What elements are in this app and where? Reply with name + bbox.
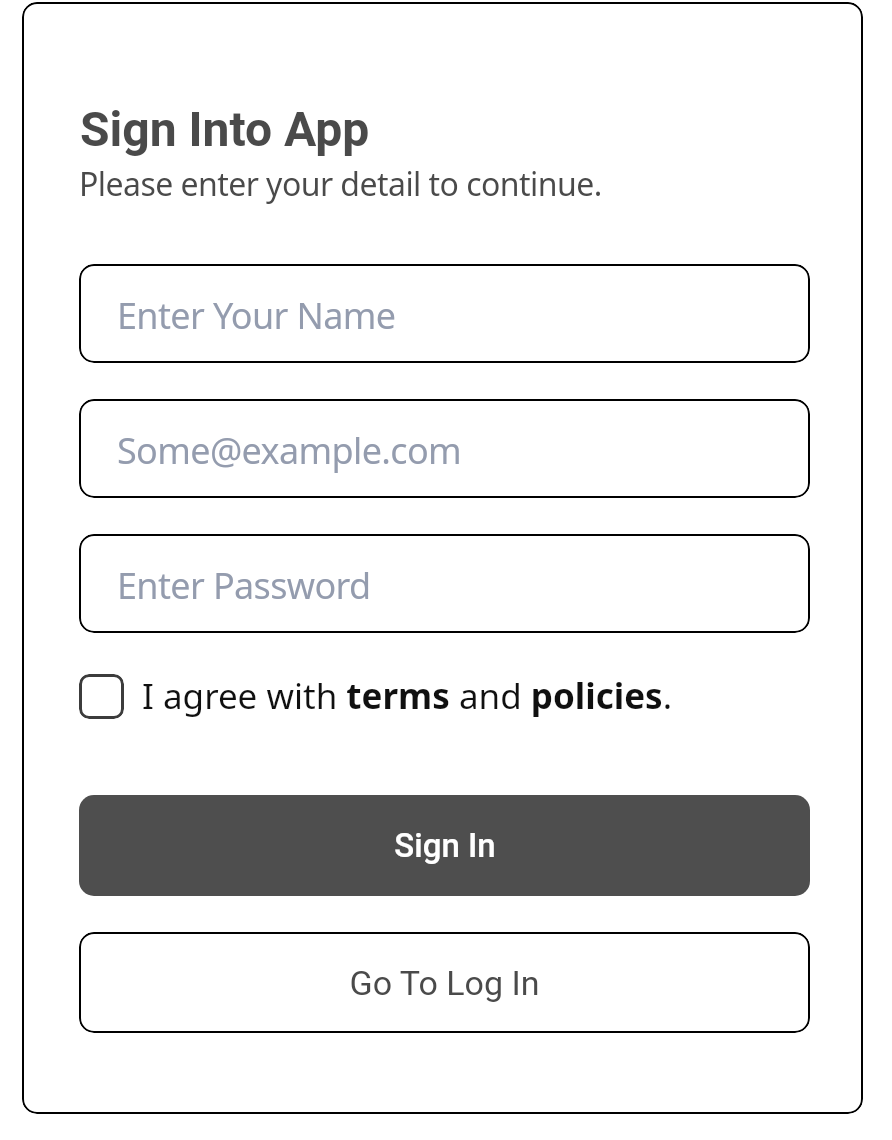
staticText: Enter Your Name: [117, 291, 396, 340]
button[interactable]: Enter Your Name: [79, 264, 810, 363]
button[interactable]: Sign In: [79, 795, 810, 896]
staticText: Please enter your detail to continue.: [79, 162, 602, 206]
staticText: Enter Password: [117, 561, 371, 610]
button[interactable]: Agree to terms and policies: [79, 674, 124, 719]
button[interactable]: Enter Password: [79, 534, 810, 633]
button[interactable]: Some@example.com: [79, 399, 810, 498]
button[interactable]: Go To Log In: [79, 932, 810, 1033]
staticText: Sign Into App: [80, 101, 370, 157]
button[interactable]: Agree to terms and policies: [79, 674, 673, 719]
staticText: Sign In: [394, 826, 496, 865]
staticText: I agree with terms and policies.: [142, 672, 673, 717]
staticText: Some@example.com: [117, 426, 462, 475]
staticText: Go To Log In: [349, 963, 540, 1003]
